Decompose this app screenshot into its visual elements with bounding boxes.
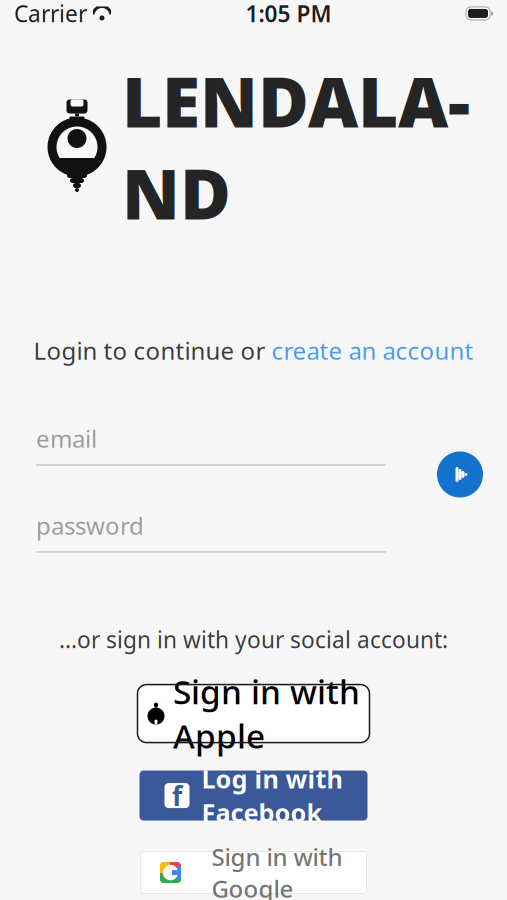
staticText: Sign in with Google (211, 841, 342, 900)
staticText: password (36, 509, 144, 541)
staticText: LENDALAND (122, 54, 470, 238)
staticText: email (36, 422, 97, 454)
staticText: ...or sign in with your social account: (59, 624, 448, 655)
button[interactable]: Sign in with Apple (137, 685, 369, 743)
button[interactable]: create an account (271, 335, 473, 366)
staticText: Sign in with Apple (173, 669, 360, 758)
button[interactable]: f (139, 771, 367, 821)
staticText: f (172, 778, 182, 813)
staticText: Log in with Facebook (201, 762, 342, 829)
staticText: create an account (271, 335, 473, 366)
staticText: Carrier (14, 0, 87, 28)
button[interactable]: Log in (432, 446, 488, 502)
staticText: Login to continue or (33, 335, 271, 366)
button[interactable]: Sign in with Google (140, 852, 366, 894)
staticText: 1:05 PM (245, 0, 331, 28)
